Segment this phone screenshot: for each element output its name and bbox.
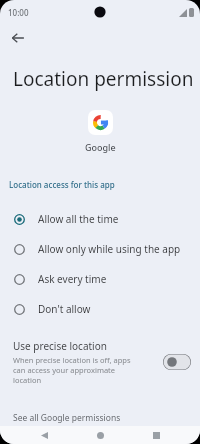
button[interactable]: Back <box>4 24 32 52</box>
staticText: Use precise location <box>13 339 107 353</box>
staticText: Location access for this app <box>9 179 115 190</box>
button[interactable]: Back <box>32 426 56 444</box>
button[interactable]: Ask every time <box>0 264 200 294</box>
button[interactable]: Allow all the time <box>0 204 200 234</box>
button[interactable]: See all Google permissions <box>0 410 121 426</box>
button[interactable]: Use precise location <box>0 336 200 388</box>
button[interactable]: Don't allow <box>0 294 200 324</box>
staticText: Allow only while using the app <box>38 242 181 256</box>
button[interactable]: Recent apps <box>144 426 168 444</box>
other: Use precise location toggle <box>163 354 191 370</box>
staticText: 10:00 <box>8 7 29 18</box>
button[interactable]: Allow only while using the app <box>0 234 200 264</box>
staticText: When precise location is off, apps can a… <box>13 355 131 385</box>
staticText: Don't allow <box>38 302 91 316</box>
button[interactable]: Home <box>88 426 112 444</box>
staticText: Allow all the time <box>38 212 119 226</box>
staticText: Google <box>85 141 116 153</box>
staticText: Ask every time <box>38 272 107 286</box>
staticText: Location permission <box>13 66 194 92</box>
